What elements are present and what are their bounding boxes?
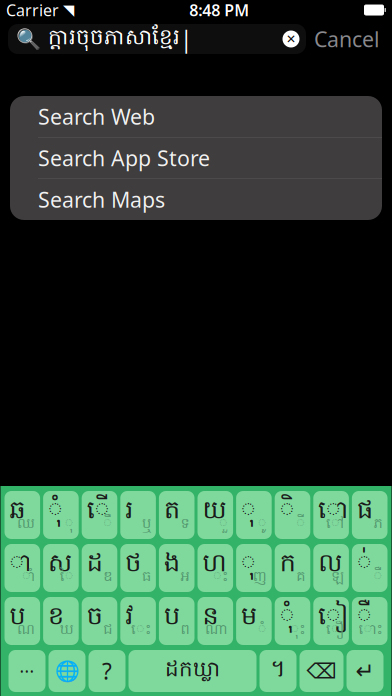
staticText: ដ xyxy=(87,547,103,583)
staticText: ឺ xyxy=(373,567,382,588)
button[interactable]: ផ xyxy=(352,491,387,539)
button[interactable]: Symbols xyxy=(88,650,125,692)
staticText: ឌ xyxy=(103,567,112,588)
button[interactable]: ុំ xyxy=(275,597,310,645)
staticText: ញ xyxy=(253,567,267,588)
staticText: ំ xyxy=(258,620,267,641)
staticText: Carrier xyxy=(6,0,59,21)
staticText: Cancel xyxy=(314,25,380,53)
staticText: ឃ xyxy=(60,620,74,641)
button[interactable]: ៀ xyxy=(313,597,349,645)
button[interactable]: Delete xyxy=(299,650,343,692)
staticText: ឿ xyxy=(326,620,344,641)
staticText: 🔍 xyxy=(16,28,41,50)
staticText: ទ xyxy=(180,514,189,535)
button[interactable]: ថ xyxy=(120,544,156,592)
button[interactable]: រ xyxy=(120,491,156,539)
staticText: ុ xyxy=(65,514,74,535)
button[interactable]: ល xyxy=(313,544,349,592)
button[interactable]: ស xyxy=(43,544,79,592)
staticText: ល xyxy=(318,547,342,583)
staticText: | xyxy=(180,24,192,54)
staticText: ុ xyxy=(241,494,256,530)
staticText: ព xyxy=(180,620,189,641)
staticText: ើ xyxy=(87,494,110,530)
staticText: ៀ xyxy=(318,600,349,636)
button[interactable]: ង xyxy=(159,544,194,592)
button[interactable]: ហ xyxy=(197,544,233,592)
button[interactable]: ឆ xyxy=(4,491,40,539)
staticText: ? xyxy=(102,656,112,686)
staticText: 🌐 xyxy=(54,660,79,682)
button[interactable]: ប xyxy=(4,597,40,645)
button[interactable]: More xyxy=(8,650,45,692)
staticText: ន xyxy=(202,600,218,636)
button[interactable]: Next keyboard xyxy=(48,650,85,692)
staticText: ខ xyxy=(48,600,64,636)
button[interactable]: ា xyxy=(4,544,40,592)
staticText: ាំ xyxy=(22,567,35,588)
staticText: ោះ xyxy=(358,620,382,641)
button[interactable]: ន xyxy=(197,597,233,645)
button[interactable]: ិ xyxy=(275,491,310,539)
staticText: ឬ xyxy=(142,514,151,535)
staticText: ុ xyxy=(241,547,256,583)
button[interactable]: ច xyxy=(82,597,117,645)
staticText: ណា xyxy=(205,620,228,641)
button[interactable]: ់ xyxy=(352,544,387,592)
button[interactable]: ប xyxy=(159,597,194,645)
button[interactable]: Clear text xyxy=(276,24,306,54)
button[interactable]: Khan xyxy=(259,650,296,692)
staticText: ច xyxy=(87,600,103,636)
staticText: ✕ xyxy=(286,32,296,46)
staticText: ួ xyxy=(219,514,228,535)
staticText: ម xyxy=(241,600,257,636)
staticText: ៃ xyxy=(60,567,74,588)
staticText: ធ xyxy=(142,567,151,588)
staticText: Search Web xyxy=(38,102,155,131)
button[interactable]: ខ xyxy=(43,597,79,645)
staticText: ុំ xyxy=(280,600,295,636)
staticText: យ xyxy=(202,494,226,530)
button[interactable]: ដ xyxy=(82,544,117,592)
button[interactable]: Cancel xyxy=(306,22,388,56)
button[interactable]: ុ xyxy=(236,544,272,592)
staticText: ុះ xyxy=(290,620,305,641)
button[interactable]: ុ xyxy=(236,491,272,539)
staticText: Search Maps xyxy=(38,185,165,214)
staticText: ុំ xyxy=(48,494,63,530)
button[interactable]: ត xyxy=(159,491,194,539)
staticText: ិ xyxy=(280,494,295,530)
staticText: ៅ xyxy=(326,514,344,535)
button[interactable]: Space xyxy=(128,650,256,692)
staticText: ភ xyxy=(373,514,382,535)
staticText: ់ xyxy=(357,547,372,583)
button[interactable]: ម xyxy=(236,597,272,645)
staticText: ថ xyxy=(125,547,141,583)
button[interactable]: ឺ xyxy=(352,597,387,645)
button[interactable]: វ xyxy=(120,597,156,645)
staticText: ផ xyxy=(357,494,373,530)
staticText: ា xyxy=(9,547,32,583)
staticText: ះ xyxy=(213,567,228,588)
button[interactable]: យ xyxy=(197,491,233,539)
button[interactable]: Search Web xyxy=(10,96,382,137)
staticText: ដកឃ្លា xyxy=(165,656,220,686)
staticText: ។ xyxy=(270,655,285,687)
staticText: េះ xyxy=(131,620,151,641)
button[interactable]: Search App Store xyxy=(10,137,382,178)
staticText: ↵ xyxy=(355,658,374,684)
button[interactable]: ោ xyxy=(313,491,349,539)
staticText: ឈ xyxy=(17,514,35,535)
button[interactable]: ុំ xyxy=(43,491,79,539)
button[interactable]: Search Maps xyxy=(10,179,382,220)
staticText: ជ xyxy=(103,620,112,641)
staticText: 8:48 PM xyxy=(189,0,249,21)
button[interactable]: Return xyxy=(346,650,383,692)
staticText: រ xyxy=(125,494,133,530)
staticText: ឡ xyxy=(331,567,344,588)
staticText: វ xyxy=(125,600,133,636)
button[interactable]: ក xyxy=(275,544,310,592)
staticText: ឺ xyxy=(357,600,372,636)
button[interactable]: ើ xyxy=(82,491,117,539)
